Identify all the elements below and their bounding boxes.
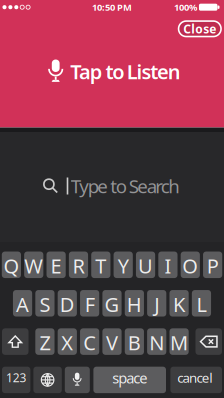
- button[interactable]: C: [80, 328, 99, 355]
- button[interactable]: Y: [114, 252, 133, 278]
- staticText: B: [128, 329, 141, 356]
- staticText: Z: [39, 329, 50, 356]
- staticText: 10:50 PM: [92, 1, 132, 13]
- staticText: Type to Search: [71, 174, 180, 198]
- button[interactable]: L: [192, 290, 211, 317]
- staticText: Q: [3, 252, 19, 279]
- staticText: H: [127, 291, 142, 318]
- button[interactable]: Tap to Listen: [48, 58, 181, 85]
- button[interactable]: Close: [179, 21, 221, 37]
- button[interactable]: Shift: [2, 328, 28, 355]
- button[interactable]: space: [93, 367, 166, 393]
- button[interactable]: B: [125, 328, 144, 355]
- button[interactable]: F: [80, 290, 99, 317]
- button[interactable]: Dictate: [65, 367, 90, 393]
- staticText: U: [138, 252, 153, 279]
- staticText: S: [39, 291, 50, 318]
- staticText: C: [83, 329, 96, 356]
- staticText: A: [16, 291, 29, 318]
- staticText: P: [207, 252, 219, 279]
- button[interactable]: W: [24, 252, 43, 278]
- button[interactable]: Next keyboard: [33, 367, 62, 393]
- button[interactable]: O: [181, 252, 200, 278]
- button[interactable]: X: [58, 328, 77, 355]
- button[interactable]: T: [91, 252, 110, 278]
- button[interactable]: P: [203, 252, 222, 278]
- staticText: cancel: [177, 369, 212, 386]
- staticText: G: [104, 291, 119, 318]
- staticText: K: [173, 291, 185, 318]
- button[interactable]: D: [58, 290, 77, 317]
- button[interactable]: K: [169, 290, 189, 317]
- button[interactable]: G: [102, 290, 122, 317]
- button[interactable]: V: [102, 328, 122, 355]
- button[interactable]: U: [136, 252, 155, 278]
- staticText: F: [85, 291, 95, 318]
- button[interactable]: S: [35, 290, 54, 317]
- button[interactable]: J: [147, 290, 166, 317]
- staticText: Close: [183, 21, 216, 37]
- button[interactable]: Delete: [195, 328, 222, 355]
- staticText: Tap to Listen: [70, 58, 181, 85]
- staticText: R: [72, 252, 84, 279]
- button[interactable]: M: [169, 328, 189, 355]
- button[interactable]: Z: [35, 328, 54, 355]
- staticText: T: [95, 252, 106, 279]
- button[interactable]: Q: [2, 252, 21, 278]
- button[interactable]: N: [147, 328, 166, 355]
- button[interactable]: E: [46, 252, 66, 278]
- button[interactable]: cancel: [170, 367, 222, 393]
- staticText: D: [60, 291, 75, 318]
- staticText: V: [106, 329, 118, 356]
- button[interactable]: 123: [2, 367, 30, 393]
- staticText: 100%: [174, 1, 197, 13]
- staticText: L: [196, 291, 206, 318]
- staticText: J: [154, 291, 159, 318]
- staticText: N: [149, 329, 164, 356]
- staticText: M: [170, 329, 188, 356]
- staticText: E: [51, 252, 62, 279]
- staticText: W: [24, 252, 43, 279]
- staticText: I: [164, 252, 171, 279]
- button[interactable]: Type to Search: [42, 174, 180, 198]
- staticText: space: [112, 368, 147, 387]
- staticText: X: [61, 329, 73, 356]
- button[interactable]: A: [13, 290, 32, 317]
- button[interactable]: I: [158, 252, 177, 278]
- staticText: 123: [6, 370, 26, 386]
- button[interactable]: H: [125, 290, 144, 317]
- staticText: Y: [118, 252, 129, 279]
- staticText: O: [182, 252, 198, 279]
- button[interactable]: R: [69, 252, 88, 278]
